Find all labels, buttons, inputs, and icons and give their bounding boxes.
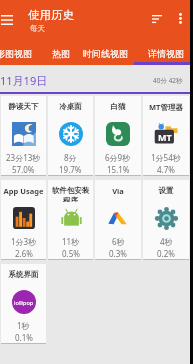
staticText: 15.1% bbox=[107, 164, 130, 175]
button[interactable]: 软件包安装程序 bbox=[48, 180, 93, 259]
staticText: 使用历史 bbox=[28, 8, 74, 22]
staticText: 每天 bbox=[30, 24, 45, 33]
staticText: 设置 bbox=[144, 186, 188, 195]
staticText: 热图 bbox=[52, 48, 70, 59]
staticText: 白猫 bbox=[96, 102, 140, 111]
staticText: 1分3秒 bbox=[11, 236, 37, 247]
button[interactable]: 时间线视图 bbox=[80, 42, 130, 65]
staticText: 0.1% bbox=[15, 332, 33, 343]
button[interactable]: 白猫 bbox=[95, 96, 141, 175]
staticText: 6秒 bbox=[112, 236, 125, 247]
button[interactable]: 冷桌面 bbox=[48, 96, 93, 175]
button[interactable]: 热图 bbox=[50, 42, 72, 65]
button[interactable]: 设置 bbox=[143, 180, 189, 259]
staticText: 0.3% bbox=[109, 248, 127, 259]
button[interactable]: 静读天下 bbox=[1, 96, 46, 175]
button[interactable]: Sort bbox=[150, 12, 164, 26]
staticText: 软件包安装程序 bbox=[49, 186, 92, 202]
button[interactable]: More options bbox=[174, 12, 186, 24]
staticText: 1分54秒 bbox=[151, 152, 181, 163]
staticText: App Usage bbox=[2, 186, 45, 196]
staticText: 11秒 bbox=[62, 236, 80, 247]
staticText: 条形图视图 bbox=[0, 48, 32, 59]
staticText: 11月19日 bbox=[0, 73, 48, 88]
staticText: 0.5% bbox=[62, 248, 80, 259]
staticText: lollipop bbox=[14, 299, 34, 306]
staticText: 57.0% bbox=[12, 164, 35, 175]
staticText: MT管理器 bbox=[144, 102, 188, 112]
button[interactable]: Via bbox=[95, 180, 141, 259]
staticText: 4.7% bbox=[157, 164, 175, 175]
staticText: 系统界面 bbox=[2, 270, 45, 279]
button[interactable]: MT管理器 bbox=[143, 96, 189, 175]
staticText: 23分13秒 bbox=[6, 152, 41, 163]
button[interactable]: 详情视图 bbox=[145, 42, 187, 65]
button[interactable]: App Usage bbox=[1, 180, 46, 259]
staticText: 1秒 bbox=[17, 320, 30, 331]
staticText: 静读天下 bbox=[2, 102, 45, 111]
staticText: 冷桌面 bbox=[49, 102, 92, 111]
staticText: 2.6% bbox=[15, 248, 33, 259]
staticText: MT bbox=[158, 131, 172, 143]
staticText: 时间线视图 bbox=[83, 48, 128, 59]
staticText: 8分 bbox=[64, 152, 77, 163]
staticText: 详情视图 bbox=[148, 48, 184, 59]
staticText: Via bbox=[96, 186, 140, 196]
button[interactable]: 系统界面 bbox=[1, 264, 46, 343]
staticText: 0.2% bbox=[157, 248, 175, 259]
staticText: 40分 42秒 bbox=[153, 76, 183, 85]
button[interactable]: Navigation menu bbox=[0, 13, 14, 26]
staticText: 19.7% bbox=[59, 164, 82, 175]
button[interactable]: 条形图视图 bbox=[0, 42, 38, 65]
staticText: 4秒 bbox=[160, 236, 173, 247]
staticText: 6分9秒 bbox=[105, 152, 131, 163]
